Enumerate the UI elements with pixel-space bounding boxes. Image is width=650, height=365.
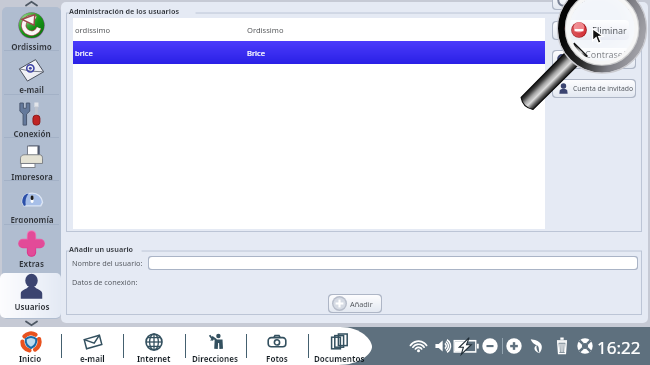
staticText: Añadir un usuario	[69, 244, 134, 254]
staticText: Ergonomía	[10, 214, 54, 223]
staticText: Conexión	[13, 128, 51, 137]
staticText: Ordissimo	[11, 41, 52, 50]
button[interactable]: Cuenta de invitado	[552, 79, 636, 98]
staticText: Contraseña	[585, 48, 629, 62]
staticText: ordissimo	[75, 25, 111, 35]
button[interactable]: Preferencias	[552, 0, 636, 10]
staticText: Datos de conexión:	[72, 277, 138, 287]
button[interactable]: brice	[73, 41, 545, 64]
staticText: Contraseña	[573, 55, 610, 64]
button[interactable]: Conexión	[2, 94, 61, 137]
staticText: Eliminar	[592, 24, 627, 36]
button[interactable]: Scroll down	[2, 319, 61, 327]
staticText: 16:22	[597, 336, 641, 359]
staticText: Brice	[247, 48, 265, 58]
staticText: Internet	[137, 353, 171, 364]
staticText: Añadir	[350, 299, 373, 309]
staticText: Extras	[19, 258, 44, 267]
staticText: Administración de los usuarios	[69, 6, 180, 16]
button[interactable]: Inicio	[0, 327, 60, 365]
button[interactable]: ordissimo	[73, 18, 545, 41]
button[interactable]: Usuarios	[2, 267, 61, 310]
button[interactable]: Documentos	[309, 327, 369, 365]
staticText: Ordissimo	[247, 25, 284, 35]
button[interactable]: Battery charging	[453, 338, 479, 354]
button[interactable]: Internet	[124, 327, 184, 365]
button[interactable]: Volume down	[482, 338, 498, 354]
button[interactable]: Volume up	[506, 338, 522, 354]
staticText: Inicio	[19, 353, 42, 364]
staticText: Fotos	[266, 353, 288, 364]
button[interactable]: Scroll up	[2, 0, 61, 7]
button[interactable]: Eliminar	[552, 21, 636, 40]
staticText: Nombre del usuario:	[72, 258, 143, 268]
button[interactable]: e-mail	[62, 327, 122, 365]
staticText: Usuarios	[14, 301, 50, 310]
button[interactable]: ordissimo	[73, 18, 545, 229]
button[interactable]: Ergonomía	[2, 180, 61, 223]
button[interactable]: Help	[577, 338, 593, 354]
staticText: Impresora	[11, 171, 53, 180]
button[interactable]: Wi-Fi	[409, 338, 428, 354]
button[interactable]: Ordissimo	[2, 7, 61, 50]
button[interactable]: Extras	[2, 224, 61, 267]
button[interactable]: Volume	[434, 338, 452, 354]
staticText: e-mail	[19, 84, 44, 93]
button[interactable]: Trash	[555, 336, 569, 355]
button[interactable]	[148, 256, 638, 270]
staticText: Eliminar	[573, 26, 600, 35]
staticText: Preferencias	[573, 0, 613, 5]
button[interactable]: e-mail	[2, 50, 61, 93]
button[interactable]: Añadir	[328, 294, 382, 313]
staticText: Cuenta de invitado	[573, 84, 634, 93]
button[interactable]: Fotos	[247, 327, 307, 365]
button[interactable]: Direcciones	[185, 327, 245, 365]
button[interactable]: Contraseña	[552, 50, 636, 69]
staticText: Documentos	[314, 353, 365, 364]
staticText: Direcciones	[192, 353, 239, 364]
staticText: e-mail	[80, 353, 105, 364]
button[interactable]: Impresora	[2, 137, 61, 180]
staticText: brice	[75, 48, 93, 58]
button[interactable]: Undo	[529, 338, 546, 354]
